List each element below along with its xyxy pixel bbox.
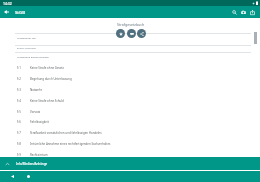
staticText: Vorsatz <box>30 110 41 114</box>
button[interactable]: Search <box>230 6 239 18</box>
staticText: 14:32 <box>3 1 12 6</box>
button[interactable]: § 5 <box>0 106 260 117</box>
staticText: Begehung durch Unterlassung <box>30 77 72 81</box>
button[interactable]: § 9 <box>0 149 260 160</box>
button[interactable] <box>0 45 260 53</box>
button[interactable]: Favourite <box>116 29 125 38</box>
staticText: Irrtümliche Annahme eines rechtfertigend… <box>30 142 111 146</box>
button[interactable]: Back <box>3 171 21 182</box>
button[interactable]: § 4 <box>0 95 260 106</box>
staticText: § 4 <box>17 99 21 103</box>
staticText: § 9 <box>17 153 21 157</box>
button[interactable] <box>0 52 260 62</box>
staticText: § 6 <box>17 120 21 124</box>
staticText: § 3 <box>17 88 21 92</box>
staticText: Keine Strafe ohne Gesetz <box>30 66 64 70</box>
button[interactable]: Home <box>20 171 36 182</box>
staticText: § 1 <box>17 66 21 70</box>
staticText: Allgemeine Bestimmungen <box>17 55 49 58</box>
staticText: Rechtsirrtum <box>30 153 48 157</box>
staticText: § 8 <box>17 142 21 146</box>
staticText: Fahrlässigkeit <box>30 120 49 124</box>
staticText: Notwehr <box>30 88 42 92</box>
button[interactable]: Back <box>0 6 15 18</box>
button[interactable]: § 2 <box>0 73 260 84</box>
staticText: Keine Strafe ohne Schuld <box>30 99 64 103</box>
button[interactable]: § 3 <box>0 84 260 95</box>
button[interactable]: § 7 <box>0 127 260 138</box>
button[interactable]: Share <box>137 29 146 38</box>
staticText: Strafbarkeit vorsätzlichen und fahrlässi… <box>30 131 102 135</box>
staticText: § 2 <box>17 77 21 81</box>
staticText: Info/Medien/Anhänge <box>16 162 48 166</box>
button[interactable]: Info/Medien/Anhänge <box>0 157 260 170</box>
button[interactable]: Share <box>248 6 257 18</box>
button[interactable]: § 8 <box>0 138 260 149</box>
button[interactable]: Notes <box>127 29 136 38</box>
button[interactable]: § 6 <box>0 116 260 127</box>
button[interactable]: § 1 <box>0 62 260 73</box>
staticText: StGB <box>15 9 25 15</box>
staticText: § 5 <box>17 110 21 114</box>
staticText: Allgemeiner Teil <box>17 36 36 39</box>
staticText: Erster Abschnitt <box>17 46 36 49</box>
staticText: Strafgesetzbuch <box>117 22 145 27</box>
button[interactable] <box>0 33 260 44</box>
button[interactable]: Photos <box>239 6 248 18</box>
staticText: § 7 <box>17 131 21 135</box>
